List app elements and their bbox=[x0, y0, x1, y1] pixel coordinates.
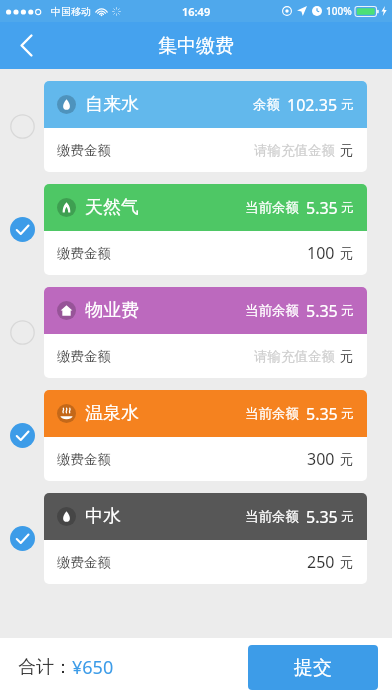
staticText: 元 bbox=[340, 142, 354, 159]
staticText: 当前余额 bbox=[245, 405, 299, 422]
button[interactable]: 物业费 bbox=[44, 287, 367, 378]
staticText: 当前余额 bbox=[245, 302, 299, 319]
staticText: 100% bbox=[326, 4, 352, 18]
staticText: 缴费金额 bbox=[57, 554, 111, 571]
staticText: 缴费金额 bbox=[57, 142, 111, 159]
staticText: 请输充值金额 bbox=[254, 348, 335, 365]
staticText: 5.35 bbox=[306, 300, 338, 322]
button[interactable]: Not selected bbox=[8, 318, 36, 346]
staticText: 集中缴费 bbox=[158, 34, 234, 58]
button[interactable]: Selected bbox=[8, 421, 36, 449]
staticText: 缴费金额 bbox=[57, 451, 111, 468]
staticText: 天然气 bbox=[85, 196, 139, 219]
button[interactable]: Selected bbox=[8, 524, 36, 552]
staticText: 请输充值金额 bbox=[254, 142, 335, 159]
button[interactable]: Not selected bbox=[8, 112, 36, 140]
staticText: 元 bbox=[341, 200, 354, 216]
staticText: 中水 bbox=[85, 505, 121, 528]
staticText: 元 bbox=[340, 348, 354, 365]
staticText: 元 bbox=[340, 451, 354, 468]
staticText: 合计： bbox=[18, 656, 72, 679]
staticText: 物业费 bbox=[85, 299, 139, 322]
staticText: 缴费金额 bbox=[57, 245, 111, 262]
staticText: 提交 bbox=[294, 656, 332, 680]
staticText: 元 bbox=[340, 554, 354, 571]
button[interactable]: 自来水 bbox=[44, 81, 367, 172]
button[interactable]: 天然气 bbox=[44, 184, 367, 275]
staticText: 缴费金额 bbox=[57, 348, 111, 365]
button[interactable]: Back bbox=[0, 22, 52, 69]
staticText: 102.35 bbox=[287, 94, 338, 116]
button[interactable]: 中水 bbox=[44, 493, 367, 584]
button[interactable]: 提交 bbox=[248, 645, 378, 690]
staticText: 余额 bbox=[253, 96, 280, 113]
staticText: 5.35 bbox=[306, 403, 338, 425]
staticText: 5.35 bbox=[306, 506, 338, 528]
staticText: 当前余额 bbox=[245, 508, 299, 525]
button[interactable]: Selected bbox=[8, 215, 36, 243]
staticText: 100 bbox=[307, 242, 335, 264]
staticText: 5.35 bbox=[306, 197, 338, 219]
button[interactable]: 温泉水 bbox=[44, 390, 367, 481]
staticText: 自来水 bbox=[85, 93, 139, 116]
staticText: 温泉水 bbox=[85, 402, 139, 425]
staticText: 元 bbox=[341, 303, 354, 319]
staticText: ¥650 bbox=[72, 655, 114, 680]
staticText: 300 bbox=[307, 448, 335, 470]
staticText: 元 bbox=[341, 509, 354, 525]
staticText: 当前余额 bbox=[245, 199, 299, 216]
staticText: 250 bbox=[307, 551, 335, 573]
staticText: 元 bbox=[341, 97, 354, 113]
staticText: 16:49 bbox=[182, 4, 211, 19]
staticText: 元 bbox=[341, 406, 354, 422]
staticText: 中国移动 bbox=[51, 5, 91, 18]
staticText: 元 bbox=[340, 245, 354, 262]
